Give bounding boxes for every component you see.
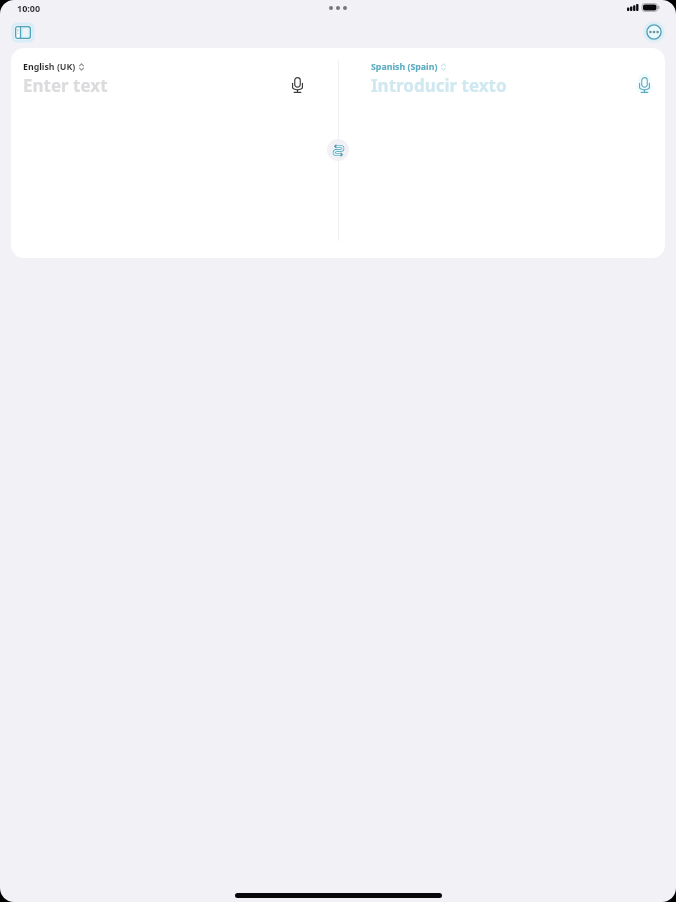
button[interactable]: Swap languages xyxy=(327,139,349,161)
button[interactable]: More options xyxy=(640,18,668,46)
staticText: 10:00 xyxy=(17,2,41,14)
staticText: Enter text xyxy=(23,74,108,97)
staticText: Introducir texto xyxy=(371,74,507,97)
staticText: English (UK) xyxy=(23,61,76,73)
button[interactable]: English (UK) xyxy=(23,61,84,73)
button[interactable]: Voice input xyxy=(283,71,311,99)
staticText: Spanish (Spain) xyxy=(371,61,438,73)
button[interactable]: Spanish (Spain) xyxy=(371,61,446,73)
button[interactable]: Toggle sidebar xyxy=(9,18,37,46)
button[interactable]: Voice input xyxy=(630,71,658,99)
